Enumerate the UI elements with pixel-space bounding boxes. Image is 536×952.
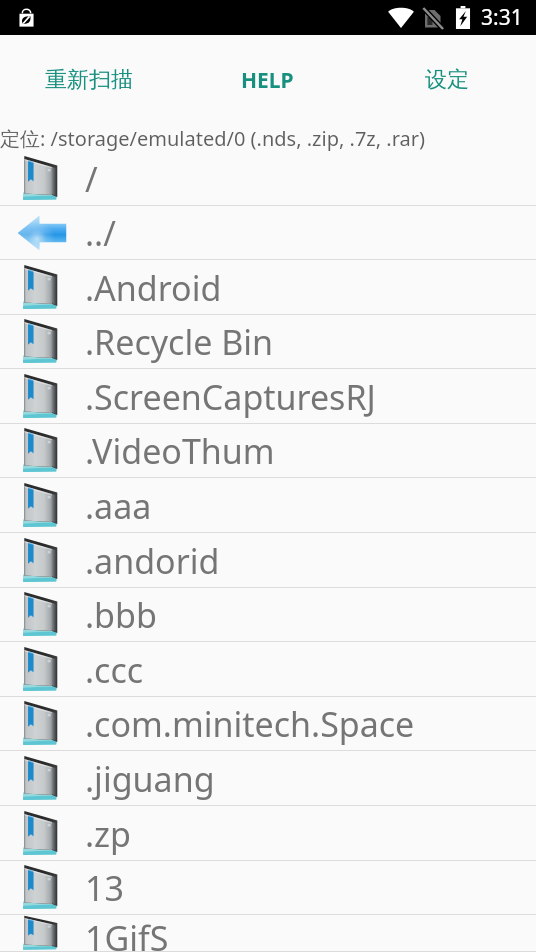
other: Folder	[18, 427, 62, 475]
staticText: 13	[85, 865, 124, 911]
staticText: .jiguang	[85, 756, 215, 802]
button[interactable]: HELP	[178, 35, 357, 125]
other: Folder	[18, 700, 62, 748]
staticText: .andorid	[85, 538, 220, 584]
button[interactable]: Folder	[0, 697, 536, 751]
staticText: 1GifS	[85, 915, 169, 952]
button[interactable]: Folder	[0, 533, 536, 588]
staticText: ../	[85, 210, 116, 256]
other: Folder	[18, 915, 62, 952]
other: Folder	[18, 864, 62, 912]
other: Folder	[18, 318, 62, 366]
button[interactable]: Folder	[0, 806, 536, 861]
staticText: .bbb	[85, 592, 157, 638]
button[interactable]: Folder	[0, 588, 536, 642]
button[interactable]: Folder	[0, 642, 536, 697]
other: Folder	[18, 810, 62, 858]
other: Go to parent folder	[17, 215, 67, 251]
button[interactable]: Folder	[0, 260, 536, 315]
other: Folder	[18, 482, 62, 530]
staticText: .com.minitech.Space	[85, 701, 415, 747]
staticText: 定位: /storage/emulated/0 (.nds, .zip, .7z…	[0, 125, 425, 151]
other: Folder	[18, 264, 62, 312]
button[interactable]: Folder	[0, 915, 536, 952]
other: Folder	[18, 537, 62, 585]
button[interactable]: Go to parent folder	[0, 206, 536, 260]
staticText: .aaa	[85, 483, 152, 529]
staticText: .Recycle Bin	[85, 319, 274, 365]
other: Folder	[18, 155, 62, 203]
staticText: 设定	[425, 66, 469, 94]
other: Shopping bag notification	[19, 8, 34, 27]
staticText: HELP	[241, 66, 294, 95]
button[interactable]: Folder	[0, 315, 536, 369]
staticText: 3:31	[481, 3, 523, 32]
staticText: .Android	[85, 265, 222, 311]
staticText: .zp	[85, 811, 132, 857]
button[interactable]: Folder	[0, 151, 536, 206]
other: No SIM card	[424, 8, 441, 28]
button[interactable]: 重新扫描	[0, 35, 178, 125]
staticText: .VideoThum	[85, 428, 275, 474]
staticText: .ScreenCapturesRJ	[85, 374, 376, 420]
button[interactable]: Folder	[0, 478, 536, 533]
button[interactable]: Folder	[0, 424, 536, 478]
other: Folder	[18, 646, 62, 694]
other: Folder	[18, 755, 62, 803]
button[interactable]: Folder	[0, 369, 536, 424]
other: Wi-Fi signal	[388, 6, 414, 29]
other: Battery charging	[455, 6, 471, 29]
button[interactable]: Folder	[0, 861, 536, 915]
button[interactable]: 设定	[357, 35, 536, 125]
staticText: .ccc	[85, 647, 144, 693]
staticText: /	[85, 156, 98, 202]
button[interactable]: Folder	[0, 751, 536, 806]
staticText: 重新扫描	[45, 66, 133, 94]
other: Folder	[18, 591, 62, 639]
other: Folder	[18, 373, 62, 421]
